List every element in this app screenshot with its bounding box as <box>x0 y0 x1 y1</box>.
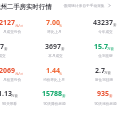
staticText: 月成交均价 <box>3 30 21 35</box>
staticText: 环比上月 <box>47 30 62 35</box>
staticText: 套 <box>4 47 8 52</box>
button[interactable]: 15.7 <box>75 42 120 59</box>
button[interactable]: 2127 <box>0 18 42 35</box>
staticText: 2127 <box>0 18 16 28</box>
button[interactable]: 2069 <box>0 66 42 83</box>
staticText: % <box>59 71 62 76</box>
button[interactable]: 数据说明 <box>63 3 112 8</box>
staticText: 15788 <box>42 89 63 99</box>
staticText: 7.00 <box>46 18 60 28</box>
button[interactable]: 1.13 <box>0 89 39 106</box>
button[interactable]: 3697 <box>25 42 85 59</box>
staticText: 万套 <box>107 47 115 52</box>
staticText: % <box>59 23 62 28</box>
staticText: 本月成交 <box>0 54 6 59</box>
staticText: 均价环比上月 <box>43 78 65 83</box>
button[interactable]: 1.44 <box>24 66 84 83</box>
staticText: 万套 <box>104 71 112 76</box>
staticText: 本月成交 <box>48 54 63 59</box>
staticText: 新住宅挂牌 <box>95 78 113 83</box>
button[interactable]: 7.00 <box>24 18 84 35</box>
button[interactable]: 935 <box>75 89 120 106</box>
staticText: 套 <box>113 23 117 28</box>
staticText: 15.7 <box>94 42 108 52</box>
staticText: 今年成交 <box>98 30 113 35</box>
button[interactable]: 3697 <box>0 42 28 59</box>
staticText: 2069 <box>0 66 16 76</box>
staticText: 住宅挂牌 <box>98 54 113 59</box>
button[interactable]: 2.7 <box>74 66 120 83</box>
staticText: 万套 <box>11 94 19 99</box>
button[interactable]: 43237 <box>75 18 120 35</box>
staticText: 1.13 <box>0 89 12 99</box>
staticText: 90天涨价房源 <box>94 101 117 106</box>
staticText: 3697 <box>45 42 62 52</box>
staticText: 1.44 <box>46 66 60 76</box>
staticText: 套 <box>109 94 113 99</box>
staticText: 90天带看 <box>2 101 17 106</box>
staticText: 套 <box>61 47 65 52</box>
staticText: 套 <box>62 94 66 99</box>
staticText: 90天降价房源 <box>43 101 66 106</box>
button[interactable]: 杭州二手房实时行情 <box>0 3 52 11</box>
button[interactable]: 15788 <box>24 89 84 106</box>
staticText: 935 <box>97 89 110 99</box>
staticText: 月租赁均价 <box>3 78 21 83</box>
staticText: 2.7 <box>95 66 105 76</box>
staticText: 3697 <box>0 42 5 52</box>
staticText: 元/㎡ <box>15 71 24 76</box>
staticText: ·数据统计来自于手动采集 <box>63 3 105 8</box>
staticText: 元/㎡ <box>15 23 24 28</box>
staticText: 43237 <box>93 18 114 28</box>
